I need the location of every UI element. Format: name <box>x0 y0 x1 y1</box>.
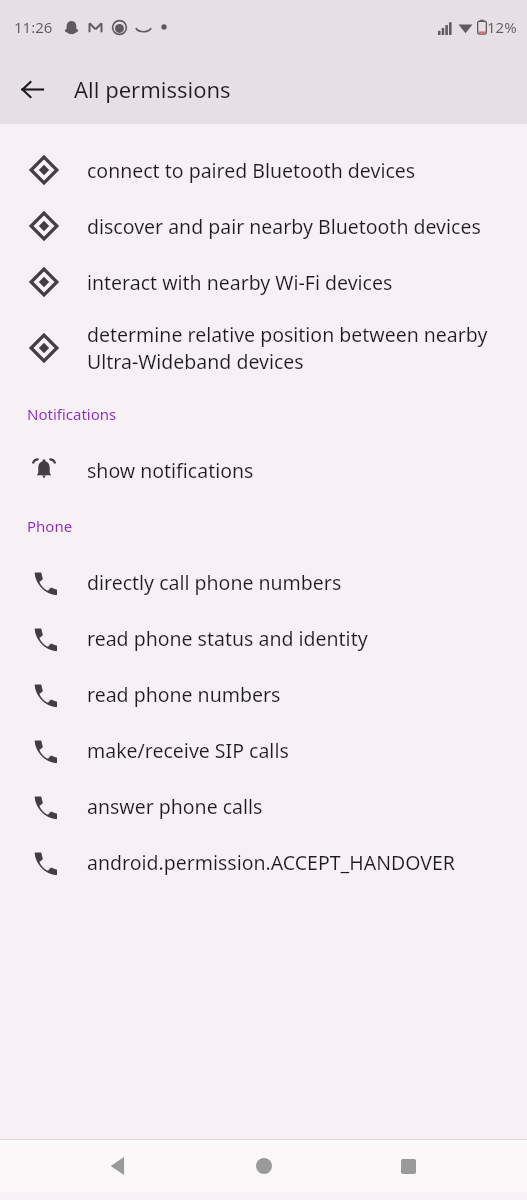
staticText: Phone <box>27 516 73 536</box>
button[interactable]: connect to paired Bluetooth devices <box>0 142 527 198</box>
staticText: android.permission.ACCEPT_HANDOVER <box>87 849 455 876</box>
staticText: determine relative position between near… <box>87 321 503 375</box>
button[interactable]: answer phone calls <box>0 778 527 834</box>
staticText: discover and pair nearby Bluetooth devic… <box>87 213 481 240</box>
staticText: Notifications <box>27 404 117 424</box>
button[interactable]: read phone status and identity <box>0 610 527 666</box>
button[interactable]: Back <box>93 1140 145 1192</box>
staticText: 11:26 <box>14 17 53 37</box>
button[interactable]: Back <box>8 65 56 113</box>
staticText: All permissions <box>74 74 231 104</box>
staticText: read phone numbers <box>87 681 281 708</box>
button[interactable]: android.permission.ACCEPT_HANDOVER <box>0 834 527 890</box>
button[interactable]: read phone numbers <box>0 666 527 722</box>
staticText: show notifications <box>87 457 254 484</box>
staticText: 12% <box>487 17 517 37</box>
button[interactable]: determine relative position between near… <box>0 310 527 386</box>
staticText: read phone status and identity <box>87 625 368 652</box>
button[interactable]: Recent apps <box>382 1140 434 1192</box>
button[interactable]: show notifications <box>0 442 527 498</box>
staticText: make/receive SIP calls <box>87 737 289 764</box>
button[interactable]: interact with nearby Wi-Fi devices <box>0 254 527 310</box>
button[interactable]: make/receive SIP calls <box>0 722 527 778</box>
staticText: answer phone calls <box>87 793 263 820</box>
staticText: directly call phone numbers <box>87 569 342 596</box>
staticText: interact with nearby Wi-Fi devices <box>87 269 393 296</box>
button[interactable]: discover and pair nearby Bluetooth devic… <box>0 198 527 254</box>
staticText: connect to paired Bluetooth devices <box>87 157 416 184</box>
button[interactable]: directly call phone numbers <box>0 554 527 610</box>
button[interactable]: Home <box>238 1140 290 1192</box>
